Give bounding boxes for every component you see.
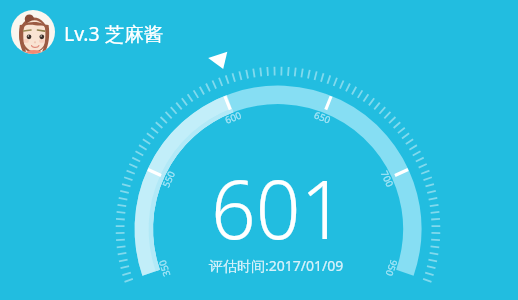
other: User avatar (11, 10, 55, 54)
staticText: Lv.3 芝麻酱 (64, 20, 164, 47)
button[interactable]: User avatar (11, 10, 164, 54)
staticText: 601 (211, 152, 345, 263)
staticText: 评估时间:2017/01/09 (209, 256, 344, 275)
